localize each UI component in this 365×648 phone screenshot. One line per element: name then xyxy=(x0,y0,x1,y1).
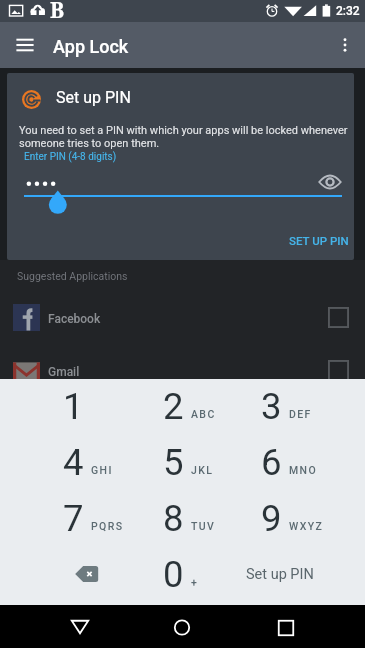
button[interactable]: 9 xyxy=(221,487,321,543)
staticText: 6 xyxy=(261,441,282,484)
button[interactable]: Facebook xyxy=(0,290,365,344)
staticText: MNO xyxy=(289,464,318,476)
staticText: Set up PIN xyxy=(246,566,314,583)
button[interactable]: 8 xyxy=(123,487,223,543)
button[interactable]: 5 xyxy=(123,431,223,487)
staticText: 2:32 xyxy=(336,4,360,18)
staticText: 0 xyxy=(163,553,184,596)
button[interactable]: More options xyxy=(334,34,356,56)
button[interactable]: 3 xyxy=(221,375,321,431)
staticText: 4 xyxy=(63,441,84,484)
button[interactable]: 2 xyxy=(123,375,223,431)
staticText: JKL xyxy=(191,464,214,476)
staticText: App Lock xyxy=(53,36,129,57)
button[interactable]: Back xyxy=(60,606,100,646)
staticText: Suggested Applications xyxy=(17,270,128,282)
staticText: TUV xyxy=(191,520,216,532)
button[interactable]: Show PIN xyxy=(315,167,345,197)
staticText: 8 xyxy=(163,497,184,540)
button[interactable]: Delete xyxy=(23,543,123,599)
staticText: 5 xyxy=(163,441,184,484)
staticText: 1 xyxy=(63,385,84,428)
staticText: SET UP PIN xyxy=(289,234,349,247)
staticText: B xyxy=(50,0,65,18)
staticText: You need to set a PIN with which your ap… xyxy=(19,124,354,149)
staticText: 9 xyxy=(261,497,282,540)
button[interactable]: 7 xyxy=(23,487,123,543)
staticText: ABC xyxy=(191,408,216,420)
staticText: Set up PIN xyxy=(56,88,131,107)
button[interactable]: 6 xyxy=(221,431,321,487)
button[interactable]: 0 xyxy=(123,543,223,599)
staticText: Enter PIN (4-8 digits) xyxy=(24,151,117,163)
button[interactable]: Home xyxy=(162,606,202,646)
staticText: PQRS xyxy=(91,520,124,532)
button[interactable]: Set up PIN xyxy=(232,546,328,602)
staticText: + xyxy=(191,576,199,588)
staticText: 7 xyxy=(63,497,84,540)
staticText: Facebook xyxy=(48,312,101,326)
staticText: 2 xyxy=(163,385,184,428)
button[interactable]: Open navigation menu xyxy=(13,33,37,57)
staticText: Gmail xyxy=(48,365,80,379)
staticText: 3 xyxy=(261,385,282,428)
button[interactable]: SET UP PIN xyxy=(273,225,354,255)
button[interactable]: 1 xyxy=(23,375,123,431)
staticText: WXYZ xyxy=(289,520,324,532)
staticText: GHI xyxy=(91,464,113,476)
button[interactable]: Gmail xyxy=(0,343,365,397)
button[interactable]: Recent apps xyxy=(266,606,306,646)
button[interactable]: 4 xyxy=(23,431,123,487)
staticText: DEF xyxy=(289,408,312,420)
